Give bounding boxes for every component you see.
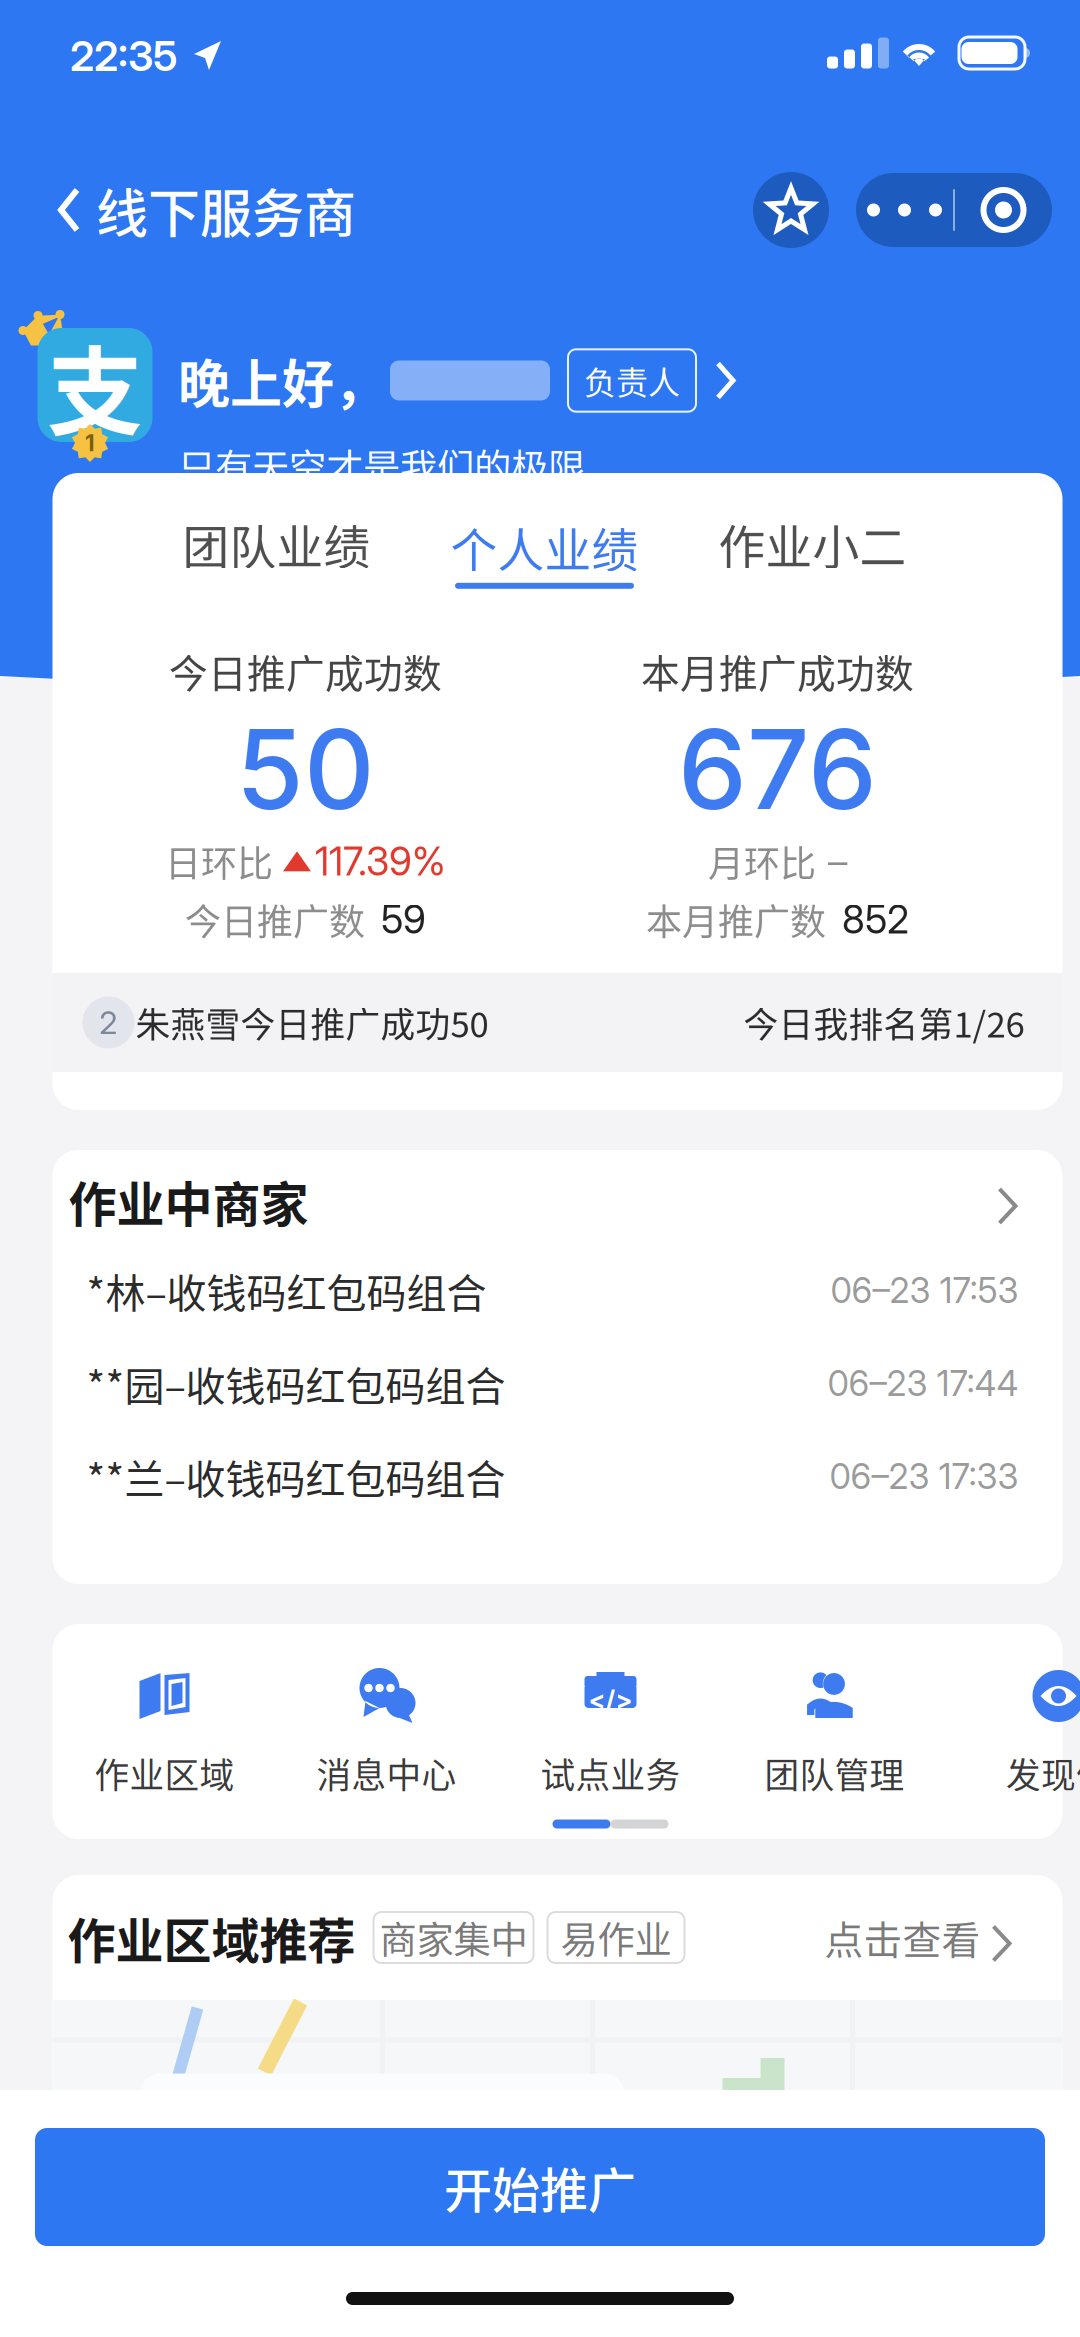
staticText: 团队管理	[764, 1748, 904, 1798]
button[interactable]: *林–收钱码红包码组合	[52, 1244, 1062, 1337]
button[interactable]: 作业区域	[54, 1650, 274, 1810]
staticText: 59	[381, 896, 426, 943]
staticText: 点击查看	[824, 1909, 980, 1965]
staticText: 月环比	[708, 835, 816, 887]
staticText: 消息中心	[316, 1748, 456, 1798]
staticText: 作业区域	[94, 1748, 234, 1798]
button[interactable]: 团队业绩	[176, 518, 376, 570]
staticText: </>	[588, 1684, 632, 1715]
button[interactable]: 商家集中	[373, 1912, 533, 1963]
staticText: *林–收钱码红包码组合	[86, 1261, 486, 1319]
staticText: 本月推广成功数	[641, 643, 914, 699]
button[interactable]: **园–收钱码红包码组合	[52, 1337, 1062, 1430]
staticText: 作业区域推荐	[67, 1903, 355, 1972]
staticText: 2	[99, 1003, 118, 1042]
staticText: 本月推广数	[646, 893, 826, 945]
staticText: 作业小二	[718, 510, 906, 578]
staticText: 今日推广成功数	[169, 643, 442, 699]
staticText: **园–收钱码红包码组合	[86, 1354, 505, 1412]
button[interactable]: 线下服务商	[55, 164, 425, 256]
staticText: 试点业务	[540, 1748, 680, 1798]
button[interactable]: 收藏	[753, 172, 829, 248]
button[interactable]: 个人业绩	[444, 509, 644, 593]
staticText: 今日我排名第1/26	[743, 997, 1024, 1048]
staticText: 日环比	[165, 835, 273, 887]
button[interactable]: 团队管理	[724, 1650, 944, 1810]
button[interactable]: 更多	[856, 173, 953, 247]
staticText: 易作业	[560, 1910, 671, 1965]
staticText: 50	[236, 703, 375, 835]
staticText: 晚上好，	[178, 343, 386, 418]
button[interactable]: 点击查看	[824, 1909, 1010, 1965]
staticText: 支	[47, 315, 143, 454]
staticText: 676	[678, 703, 877, 835]
staticText: 22:35	[70, 31, 178, 81]
button[interactable]: </>	[500, 1650, 720, 1810]
button[interactable]: 关闭	[955, 173, 1052, 247]
button[interactable]: 2	[52, 973, 1062, 1072]
button[interactable]: 发现值	[948, 1650, 1080, 1810]
button[interactable]: 晚上好，	[178, 323, 738, 488]
button[interactable]: 开始推广	[35, 2128, 1045, 2246]
staticText: 商家集中	[379, 1910, 527, 1965]
staticText: 只有天空才是我们的极限	[178, 438, 585, 492]
staticText: 朱燕雪今日推广成功50	[135, 997, 488, 1048]
staticText: 今日推广数	[185, 893, 365, 945]
staticText: 1	[85, 429, 95, 457]
button[interactable]: 消息中心	[276, 1650, 496, 1810]
button[interactable]: 作业中商家	[52, 1158, 1062, 1244]
staticText: 06–23 17:53	[830, 1269, 1018, 1311]
staticText: 117.39%	[315, 838, 446, 885]
button[interactable]: 作业小二	[712, 518, 912, 570]
staticText: 06–23 17:33	[829, 1455, 1018, 1497]
staticText: 团队业绩	[182, 510, 370, 578]
staticText: 开始推广	[444, 2152, 636, 2222]
staticText: 个人业绩	[450, 513, 638, 581]
staticText: 作业中商家	[68, 1166, 308, 1236]
staticText: **兰–收钱码红包码组合	[86, 1447, 505, 1505]
button[interactable]: 易作业	[547, 1912, 684, 1963]
staticText: 负责人	[584, 357, 680, 404]
staticText: –	[828, 838, 847, 885]
button[interactable]: **兰–收钱码红包码组合	[52, 1430, 1062, 1523]
staticText: 06–23 17:44	[827, 1362, 1018, 1404]
staticText: 线下服务商	[96, 172, 356, 248]
staticText: 852	[842, 896, 909, 943]
staticText: 发现值	[1006, 1748, 1080, 1798]
